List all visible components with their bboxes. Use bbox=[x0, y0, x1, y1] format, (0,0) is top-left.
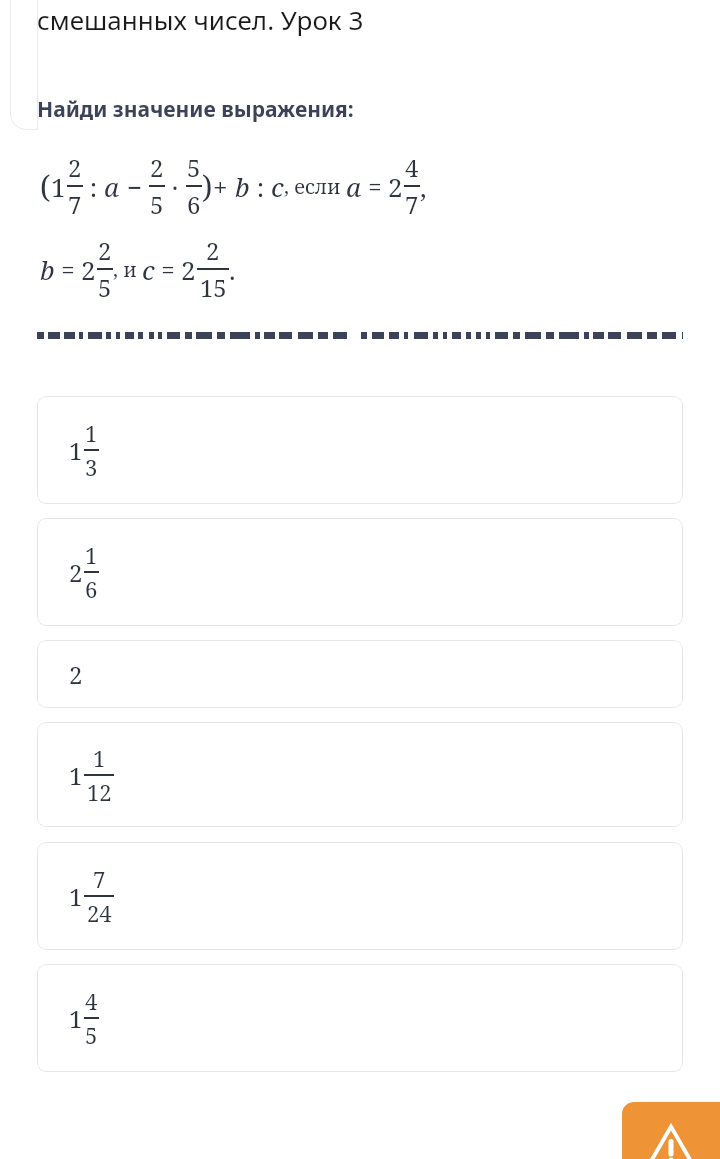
staticText: , если bbox=[284, 173, 346, 200]
staticText: a bbox=[346, 169, 362, 204]
staticText: 2 bbox=[81, 252, 96, 287]
staticText: 7 bbox=[93, 864, 106, 894]
staticText: , bbox=[420, 169, 427, 204]
staticText: 1 bbox=[51, 169, 66, 204]
staticText: 2 bbox=[388, 169, 403, 204]
staticText: 2 bbox=[69, 658, 83, 691]
staticText: . bbox=[229, 252, 236, 287]
button[interactable]: Report a problem bbox=[622, 1102, 720, 1159]
staticText: 2 bbox=[181, 252, 196, 287]
staticText: c bbox=[271, 169, 284, 204]
staticText: : bbox=[250, 169, 271, 204]
staticText: 1 bbox=[85, 540, 98, 570]
staticText: 7 bbox=[405, 188, 419, 221]
staticText: b bbox=[40, 252, 55, 287]
button[interactable]: 1 bbox=[37, 722, 683, 827]
staticText: ( bbox=[40, 166, 51, 207]
staticText: 2 bbox=[206, 234, 220, 267]
staticText: + bbox=[213, 169, 235, 204]
staticText: 1 bbox=[69, 1002, 83, 1035]
staticText: 15 bbox=[200, 271, 227, 304]
staticText: , и bbox=[113, 256, 142, 283]
staticText: 1 bbox=[85, 418, 98, 448]
staticText: 2 bbox=[69, 556, 83, 589]
staticText: c bbox=[142, 252, 155, 287]
staticText: b bbox=[235, 169, 250, 204]
staticText: 5 bbox=[85, 1020, 98, 1050]
button[interactable]: 2 bbox=[37, 640, 683, 708]
staticText: 3 bbox=[85, 452, 98, 482]
button[interactable]: 1 bbox=[37, 964, 683, 1072]
staticText: 5 bbox=[150, 188, 164, 221]
staticText: 1 bbox=[69, 759, 83, 792]
staticText: 2 bbox=[68, 151, 82, 184]
staticText: : bbox=[83, 169, 104, 204]
staticText: 5 bbox=[187, 151, 201, 184]
staticText: 1 bbox=[93, 743, 106, 773]
staticText: 6 bbox=[187, 188, 201, 221]
button[interactable]: 2 bbox=[37, 518, 683, 626]
staticText: a bbox=[104, 169, 120, 204]
staticText: 7 bbox=[68, 188, 82, 221]
staticText: 24 bbox=[87, 898, 112, 928]
staticText: − bbox=[120, 169, 149, 204]
staticText: 1 bbox=[69, 434, 83, 467]
staticText: 2 bbox=[98, 234, 112, 267]
staticText: 2 bbox=[150, 151, 164, 184]
staticText: 5 bbox=[98, 271, 112, 304]
staticText: = bbox=[362, 170, 388, 203]
staticText: = bbox=[55, 253, 81, 286]
staticText: 4 bbox=[405, 151, 419, 184]
staticText: ) bbox=[202, 166, 213, 207]
staticText: 4 bbox=[85, 986, 98, 1016]
staticText: 1 bbox=[69, 880, 83, 913]
button[interactable]: 1 bbox=[37, 842, 683, 950]
staticText: 12 bbox=[87, 777, 112, 807]
staticText: · bbox=[165, 169, 186, 204]
staticText: 6 bbox=[85, 574, 98, 604]
staticText: = bbox=[155, 253, 181, 286]
button[interactable]: 1 bbox=[37, 396, 683, 504]
staticText: Найди значение выражения: bbox=[37, 95, 354, 124]
staticText: смешанных чисел. Урок 3 bbox=[37, 2, 364, 37]
